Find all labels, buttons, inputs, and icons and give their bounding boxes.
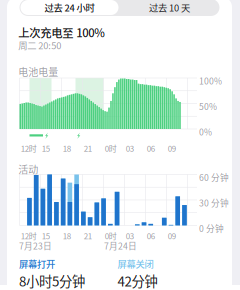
- staticText: 42分钟: [117, 271, 157, 290]
- staticText: 06: [147, 230, 155, 242]
- staticText: 周二 20:50: [18, 38, 61, 52]
- staticText: 0%: [199, 125, 212, 138]
- staticText: 电池电量: [18, 64, 58, 79]
- staticText: 03: [126, 142, 134, 154]
- staticText: 屏幕打开: [19, 257, 55, 270]
- staticText: 8小时5分钟: [19, 271, 85, 290]
- staticText: 0时: [105, 230, 117, 242]
- staticText: 12时: [21, 142, 37, 154]
- staticText: 60 分钟: [199, 171, 229, 183]
- staticText: 06: [147, 142, 155, 154]
- staticText: 21: [84, 230, 92, 242]
- button[interactable]: 过去 24 小时: [19, 0, 119, 16]
- staticText: 过去 24 小时: [44, 1, 94, 14]
- staticText: 过去 10 天: [149, 1, 190, 14]
- staticText: 30 分钟: [199, 196, 229, 209]
- staticText: 屏幕关闭: [117, 257, 153, 270]
- staticText: 21: [84, 142, 92, 154]
- staticText: 15: [42, 230, 50, 242]
- staticText: 100%: [199, 74, 222, 87]
- staticText: 50%: [199, 100, 217, 112]
- staticText: 18: [63, 142, 71, 154]
- staticText: 09: [168, 230, 176, 242]
- staticText: 0 分钟: [199, 222, 224, 234]
- staticText: 03: [126, 230, 134, 242]
- staticText: 7月23日: [19, 239, 52, 252]
- staticText: 活动: [18, 162, 38, 176]
- staticText: 7月24日: [104, 239, 137, 252]
- staticText: 上次充电至 100%: [18, 24, 105, 40]
- staticText: 15: [42, 142, 50, 154]
- staticText: 12时: [21, 230, 37, 242]
- button[interactable]: 过去 10 天: [119, 0, 219, 16]
- staticText: 18: [63, 230, 71, 242]
- staticText: 09: [168, 142, 176, 154]
- staticText: 0时: [105, 142, 117, 154]
